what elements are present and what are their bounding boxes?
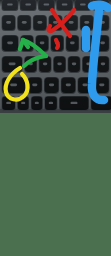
button[interactable]: Annotated keyboard photo <box>0 0 111 113</box>
